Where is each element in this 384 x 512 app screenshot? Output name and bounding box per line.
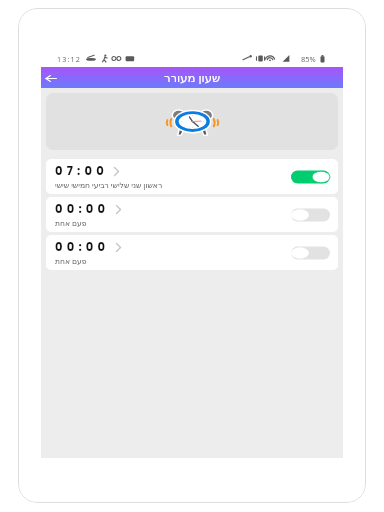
staticText: פעם אחת	[55, 218, 87, 228]
staticText: 00:00	[55, 239, 110, 255]
staticText: 85%	[301, 54, 316, 64]
button[interactable]: Alarm disabled	[291, 208, 330, 222]
staticText: 00:00	[55, 201, 110, 217]
staticText: 13:12	[57, 54, 81, 64]
staticText: ראשון שני שלישי רביעי חמישי שישי	[55, 180, 163, 190]
button[interactable]: Alarm disabled	[291, 246, 330, 260]
button[interactable]: Alarm enabled	[291, 170, 330, 184]
staticText: 07:00	[55, 163, 108, 179]
button[interactable]: 00:00	[46, 197, 338, 232]
button[interactable]: Back	[42, 69, 60, 87]
staticText: שעון מעורר	[164, 70, 221, 86]
button[interactable]: 07:00	[46, 159, 338, 194]
staticText: פעם אחת	[55, 256, 87, 266]
button[interactable]: 00:00	[46, 235, 338, 270]
